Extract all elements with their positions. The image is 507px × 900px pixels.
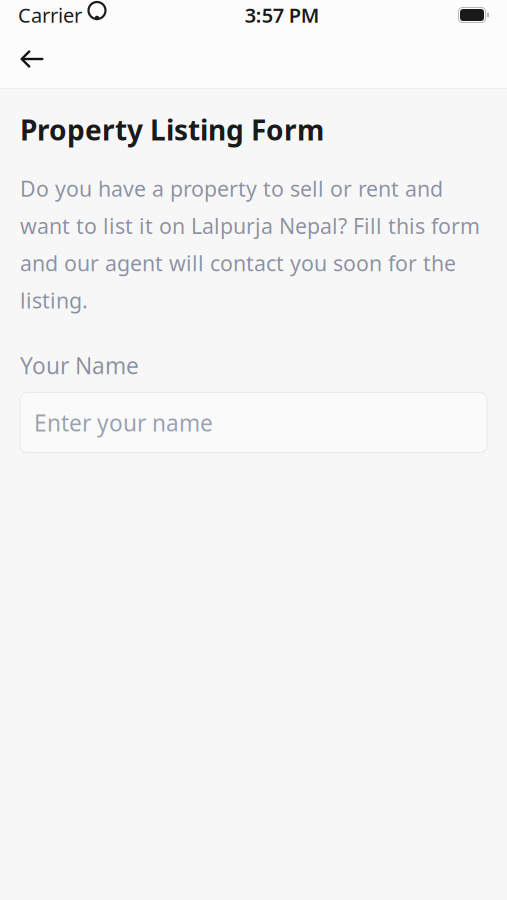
staticText: Carrier — [18, 2, 82, 28]
staticText: Your Name — [20, 350, 139, 381]
staticText: 3:57 PM — [245, 2, 320, 28]
staticText: Do you have a property to sell or rent a… — [20, 174, 480, 314]
button[interactable]: Back — [10, 37, 54, 81]
staticText: Property Listing Form — [20, 111, 324, 148]
button[interactable]: Enter your name — [20, 393, 487, 453]
staticText: Enter your name — [34, 408, 213, 438]
